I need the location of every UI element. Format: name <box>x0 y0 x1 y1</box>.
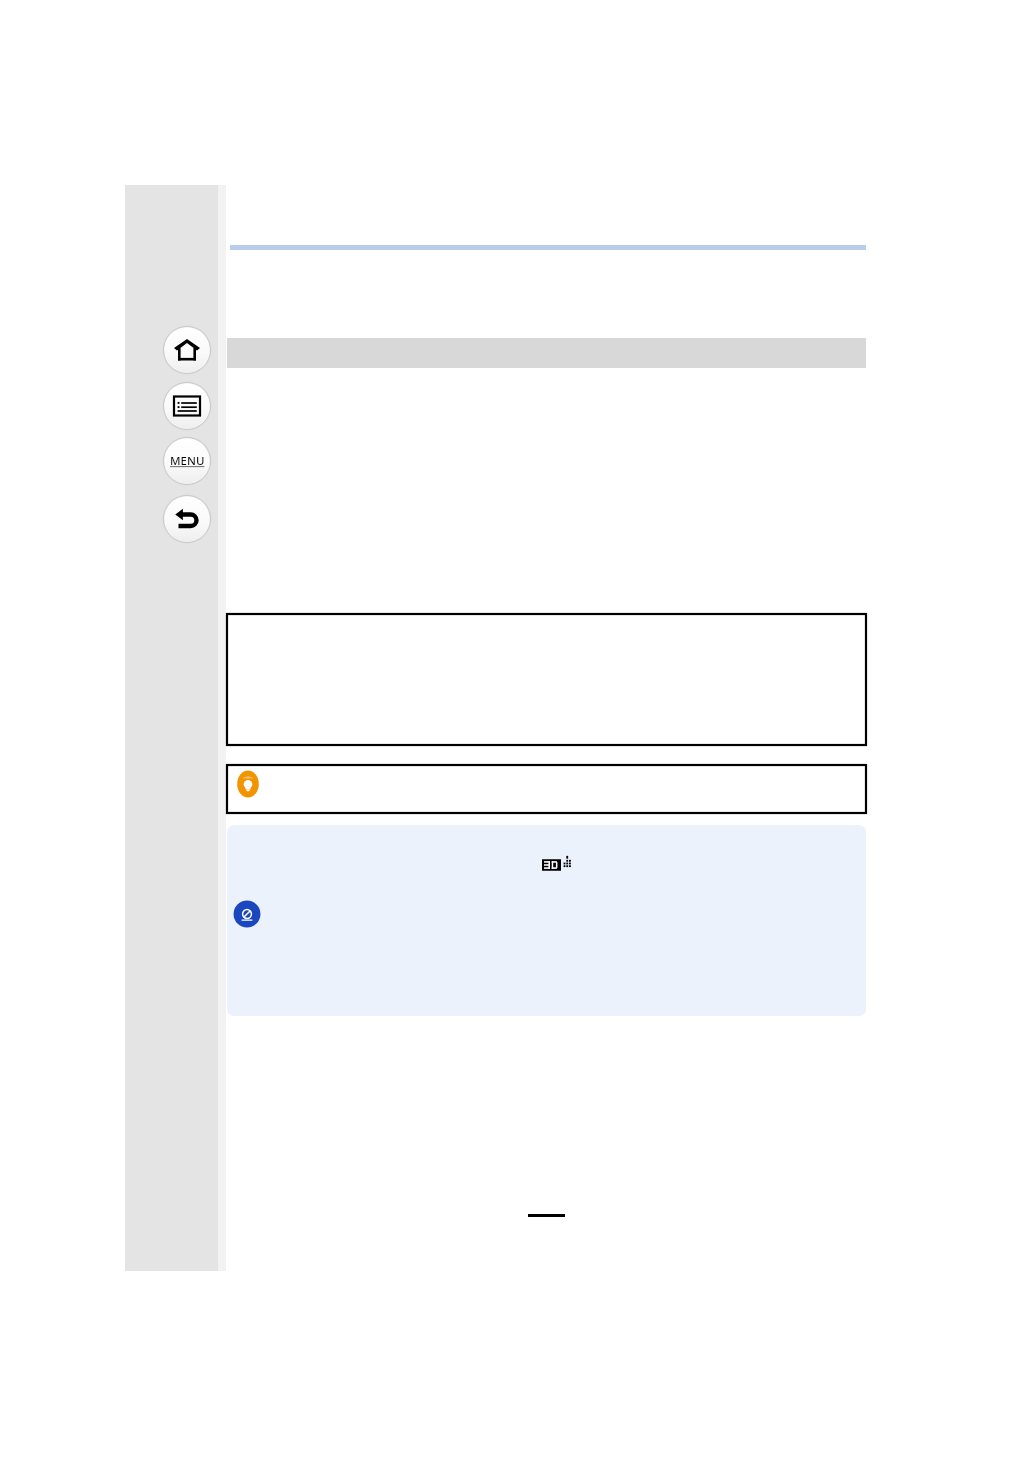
button[interactable]: Home <box>162 325 212 375</box>
button[interactable]: Display list <box>162 381 212 431</box>
button[interactable]: Back <box>162 494 212 544</box>
button[interactable]: MENU <box>162 436 212 486</box>
staticText: MENU <box>170 453 205 469</box>
